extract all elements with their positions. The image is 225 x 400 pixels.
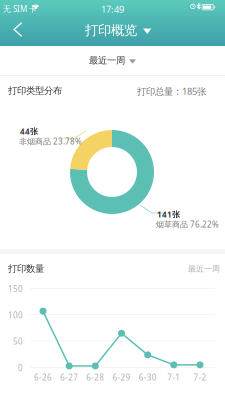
staticText: 6-30 [139,372,157,383]
staticText: 6-27 [60,372,78,383]
staticText: 烟草商品 76.22% [156,219,219,230]
staticText: 打印类型分布 [8,85,62,96]
staticText: 打印概览 [85,22,137,38]
staticText: 141张 [157,209,180,220]
staticText: 6-29 [112,372,130,383]
staticText: 150 [8,283,23,294]
staticText: 7-2 [193,372,206,383]
staticText: 打印数量 [8,263,44,274]
staticText: 6-28 [86,372,104,383]
button[interactable]: 最近一周 [0,46,225,75]
staticText: 打印总量：185张 [137,85,206,97]
staticText: 50 [13,336,23,347]
staticText: 0 [18,362,23,373]
button[interactable]: 返回 [0,15,36,44]
staticText: 17:49 [101,3,124,15]
staticText: 100 [8,310,23,320]
staticText: 最近一周 [89,55,125,66]
staticText: 无 SIM 卡 [3,3,37,14]
staticText: 6-26 [34,372,52,383]
staticText: 7-1 [167,372,180,383]
staticText: 44张 [20,126,38,137]
staticText: 非烟商品 23.78% [19,136,82,147]
button[interactable]: 打印概览 [77,17,159,43]
staticText: 最近一周 [188,264,220,274]
